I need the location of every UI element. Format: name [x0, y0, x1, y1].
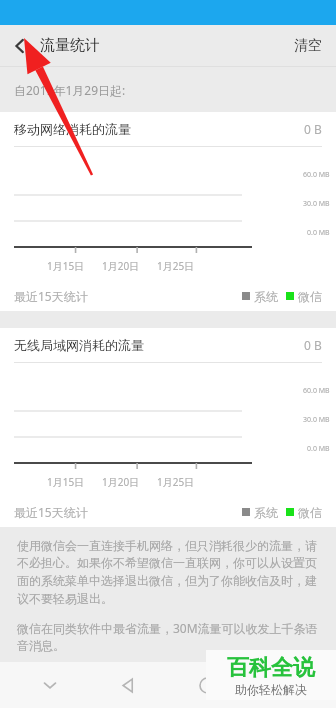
- staticText: 移动网络消耗的流量: [14, 121, 131, 137]
- staticText: 系统: [254, 505, 278, 520]
- staticText: 微信: [298, 289, 322, 304]
- staticText: 最近15天统计: [14, 288, 88, 304]
- staticText: 使用微信会一直连接手机网络，但只消耗很少的流量，请不必担心。如果你不希望微信一直…: [17, 538, 324, 607]
- staticText: 1月15日: [47, 259, 85, 273]
- staticText: 0 B: [304, 337, 322, 353]
- staticText: 1月25日: [157, 475, 195, 489]
- staticText: 0 B: [304, 121, 322, 137]
- staticText: 微信: [298, 505, 322, 520]
- staticText: 30.0 MB: [303, 415, 330, 425]
- staticText: 百科全说: [227, 654, 315, 682]
- staticText: 助你轻松解决: [235, 682, 307, 697]
- button[interactable]: Back: [0, 26, 40, 66]
- staticText: 无线局域网消耗的流量: [14, 337, 144, 353]
- button[interactable]: 清空: [280, 29, 336, 63]
- button[interactable]: Back: [89, 662, 168, 708]
- staticText: 系统: [254, 289, 278, 304]
- staticText: 清空: [294, 37, 322, 55]
- staticText: 60.0 MB: [303, 386, 330, 396]
- button[interactable]: Hide keyboard: [10, 662, 89, 708]
- staticText: 0.0 MB: [307, 444, 330, 454]
- staticText: 1月20日: [102, 259, 140, 273]
- button[interactable]: Home: [168, 662, 247, 708]
- staticText: 1月15日: [47, 475, 85, 489]
- staticText: 1月25日: [157, 259, 195, 273]
- staticText: 最近15天统计: [14, 504, 88, 520]
- staticText: 自2019年1月29日起:: [14, 82, 126, 98]
- staticText: 60.0 MB: [303, 170, 330, 180]
- staticText: 30.0 MB: [303, 199, 330, 209]
- staticText: 0.0 MB: [307, 228, 330, 238]
- staticText: 1月20日: [102, 475, 140, 489]
- staticText: 微信在同类软件中最省流量，30M流量可以收发上千条语音消息。: [17, 620, 324, 654]
- staticText: 流量统计: [40, 36, 100, 55]
